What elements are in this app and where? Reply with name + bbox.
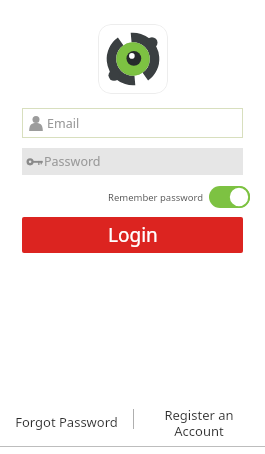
staticText: Forgot Password xyxy=(15,413,118,431)
button[interactable]: Login xyxy=(22,217,243,253)
button[interactable]: Forgot Password xyxy=(0,398,133,446)
button[interactable]: Remember password toggle xyxy=(209,186,250,208)
button[interactable]: Email xyxy=(22,108,243,138)
staticText: Login xyxy=(108,222,158,248)
staticText: Remember password xyxy=(108,191,204,204)
staticText: Email xyxy=(47,115,80,132)
staticText: Register an Account xyxy=(164,406,234,439)
staticText: Password xyxy=(44,153,101,170)
button[interactable]: Remember password xyxy=(108,185,250,209)
button[interactable]: Password xyxy=(22,148,243,175)
button[interactable]: Register an Account xyxy=(133,398,265,446)
